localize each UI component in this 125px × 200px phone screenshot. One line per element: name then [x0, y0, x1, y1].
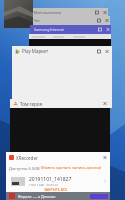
staticText: Мой компьютер [34, 10, 62, 15]
staticText: Яндекс — а Деннис [18, 194, 56, 199]
button[interactable]: XRecorder [6, 152, 110, 200]
button[interactable]: Мой компьютер [30, 8, 108, 16]
button[interactable]: Том героя [10, 99, 110, 152]
button[interactable]: Яндекс — а Деннис [6, 192, 110, 200]
button[interactable]: Ещё [102, 176, 108, 186]
staticText: Play Маркет [22, 48, 49, 54]
staticText: Том героя [20, 101, 42, 107]
staticText: Чат [34, 18, 40, 23]
button[interactable]: Чат [30, 16, 110, 25]
staticText: XRecorder [16, 155, 38, 161]
button[interactable]: Samsung Internet [30, 25, 111, 34]
staticText: 20191101_141827 [29, 176, 72, 183]
staticText: Samsung Internet [34, 27, 64, 32]
button[interactable]: Play Маркет [12, 46, 112, 108]
button[interactable]: ЗАКРЫТЬ ВСЕ [44, 187, 68, 192]
staticText: Можно сделать запись длиной 0Р:39 [41, 165, 110, 171]
staticText: 1050.1 MB 00:00:43 [29, 184, 59, 186]
staticText: Доступно 6.5GB [9, 166, 41, 171]
